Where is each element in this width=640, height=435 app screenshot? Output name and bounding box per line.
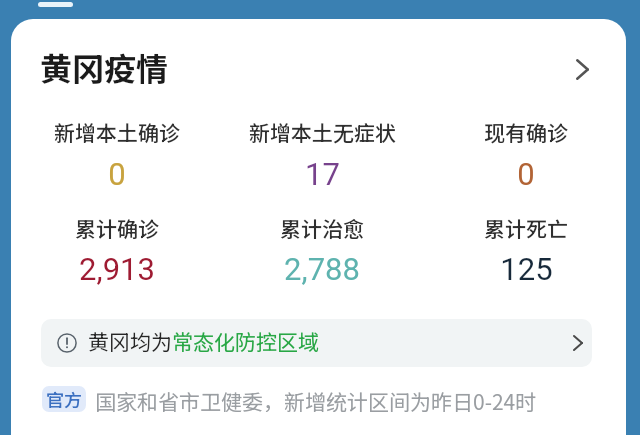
staticText: 0 (108, 156, 126, 192)
staticText: 黄冈均为常态化防控区域 (88, 326, 319, 356)
button[interactable]: 黄冈疫情 (11, 37, 626, 101)
staticText: 2,788 (284, 251, 360, 287)
button[interactable]: 新增本土确诊 (17, 109, 217, 179)
staticText: 2,913 (79, 251, 155, 287)
staticText: 黄冈疫情 (40, 44, 169, 90)
staticText: 17 (305, 156, 340, 192)
staticText: 累计治愈 (280, 213, 364, 243)
button[interactable]: 累计治愈 (222, 205, 422, 275)
staticText: 0 (517, 156, 535, 192)
staticText: 国家和省市卫健委，新增统计区间为昨日0-24时 (95, 386, 537, 412)
staticText: 累计确诊 (75, 213, 159, 243)
button[interactable]: 累计死亡 (426, 205, 626, 275)
button[interactable]: 累计确诊 (17, 205, 217, 275)
staticText: 累计死亡 (484, 213, 568, 243)
button[interactable]: 官方 (42, 386, 86, 412)
staticText: 官方 (46, 386, 82, 412)
staticText: 125 (500, 251, 553, 287)
staticText: 新增本土确诊 (54, 117, 180, 147)
staticText: 现有确诊 (484, 117, 568, 147)
button[interactable]: 新增本土无症状 (222, 109, 422, 179)
button[interactable]: 现有确诊 (426, 109, 626, 179)
other: 查看黄冈疫情详情 (576, 59, 589, 80)
button[interactable]: 黄冈均为常态化防控区域 (41, 319, 592, 367)
staticText: 新增本土无症状 (249, 117, 396, 147)
